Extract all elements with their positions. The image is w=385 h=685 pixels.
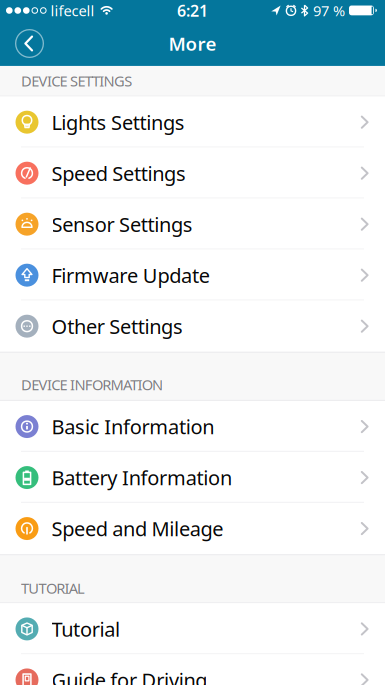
staticText: lifecell <box>51 1 95 20</box>
staticText: Other Settings <box>51 313 183 339</box>
button[interactable]: Speed Settings <box>0 148 385 199</box>
button[interactable]: Firmware Update <box>0 250 385 301</box>
staticText: Sensor Settings <box>51 211 193 237</box>
button[interactable]: Back <box>15 29 44 58</box>
staticText: Firmware Update <box>51 262 210 288</box>
staticText: Tutorial <box>51 616 120 642</box>
staticText: Battery Information <box>51 464 232 491</box>
button[interactable]: Battery Information <box>0 452 385 503</box>
staticText: Speed and Mileage <box>51 515 223 542</box>
staticText: 97 % <box>313 1 345 20</box>
button[interactable]: Basic Information <box>0 401 385 452</box>
staticText: Basic Information <box>51 413 214 440</box>
staticText: DEVICE INFORMATION <box>21 375 163 394</box>
staticText: DEVICE SETTINGS <box>21 71 132 90</box>
staticText: Speed Settings <box>51 160 186 186</box>
button[interactable]: Other Settings <box>0 301 385 352</box>
staticText: Lights Settings <box>51 109 185 135</box>
button[interactable]: Lights Settings <box>0 97 385 148</box>
staticText: 6:21 <box>177 0 208 21</box>
button[interactable]: Speed and Mileage <box>0 503 385 554</box>
button[interactable]: Tutorial <box>0 603 385 654</box>
staticText: TUTORIAL <box>21 578 85 598</box>
staticText: More <box>168 31 216 56</box>
staticText: Guide for Driving <box>51 667 207 685</box>
button[interactable]: Sensor Settings <box>0 199 385 250</box>
button[interactable]: Guide for Driving <box>0 654 385 685</box>
